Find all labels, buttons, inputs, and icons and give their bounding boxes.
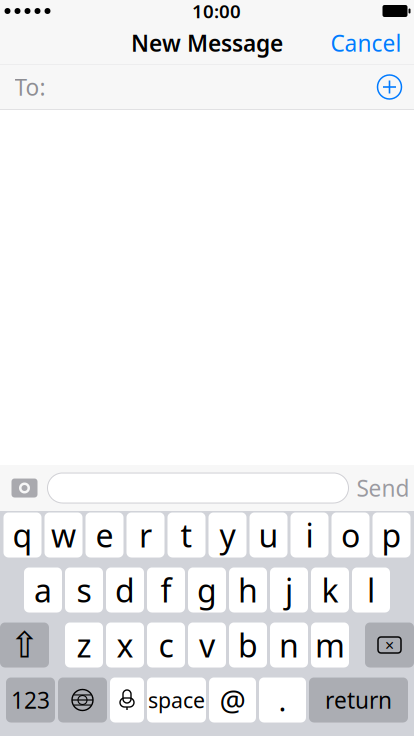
- staticText: y: [219, 514, 235, 556]
- button[interactable]: return: [309, 677, 408, 722]
- button[interactable]: c: [147, 622, 185, 667]
- staticText: j: [285, 569, 293, 611]
- staticText: d: [115, 569, 135, 611]
- button[interactable]: Add contact: [366, 66, 414, 108]
- staticText: u: [258, 514, 278, 556]
- staticText: ×: [385, 634, 394, 656]
- staticText: r: [139, 514, 152, 556]
- button[interactable]: n: [270, 622, 308, 667]
- button[interactable]: i: [290, 512, 328, 557]
- staticText: g: [197, 569, 217, 611]
- button[interactable]: Next keyboard: [58, 677, 107, 722]
- staticText: f: [160, 569, 171, 611]
- staticText: n: [279, 624, 299, 666]
- staticText: k: [321, 569, 338, 611]
- button[interactable]: o: [331, 512, 369, 557]
- button[interactable]: 123: [6, 677, 55, 722]
- staticText: b: [238, 624, 258, 666]
- staticText: q: [12, 514, 32, 556]
- staticText: Cancel: [330, 28, 401, 58]
- button[interactable]: x: [106, 622, 144, 667]
- button[interactable]: f: [147, 567, 185, 612]
- staticText: .: [278, 680, 286, 719]
- staticText: @: [219, 680, 245, 719]
- staticText: x: [116, 624, 133, 666]
- button[interactable]: Delete: [365, 622, 414, 667]
- button[interactable]: q: [3, 512, 41, 557]
- staticText: i: [305, 514, 313, 556]
- staticText: 10:00: [192, 0, 241, 23]
- button[interactable]: Cancel: [318, 19, 414, 67]
- button[interactable]: s: [65, 567, 103, 612]
- staticText: return: [325, 685, 392, 715]
- staticText: ⇧: [9, 625, 39, 665]
- button[interactable]: y: [208, 512, 246, 557]
- button[interactable]: space: [147, 677, 206, 722]
- button[interactable]: g: [188, 567, 226, 612]
- staticText: p: [381, 514, 401, 556]
- button[interactable]: m: [311, 622, 349, 667]
- staticText: 123: [11, 685, 50, 715]
- button[interactable]: Dictation: [110, 677, 144, 722]
- button[interactable]: z: [65, 622, 103, 667]
- button[interactable]: b: [229, 622, 267, 667]
- button[interactable]: k: [311, 567, 349, 612]
- staticText: space: [148, 686, 205, 714]
- button[interactable]: v: [188, 622, 226, 667]
- button[interactable]: l: [352, 567, 390, 612]
- button[interactable]: Shift: [0, 622, 49, 667]
- staticText: New Message: [131, 28, 283, 58]
- button[interactable]: j: [270, 567, 308, 612]
- button[interactable]: Message field: [47, 473, 348, 503]
- staticText: w: [51, 514, 76, 556]
- button[interactable]: h: [229, 567, 267, 612]
- button[interactable]: a: [24, 567, 62, 612]
- staticText: e: [95, 514, 113, 556]
- staticText: o: [341, 514, 360, 556]
- button[interactable]: w: [44, 512, 82, 557]
- button[interactable]: u: [249, 512, 287, 557]
- button[interactable]: e: [85, 512, 123, 557]
- button[interactable]: r: [126, 512, 164, 557]
- button[interactable]: Camera: [0, 469, 47, 507]
- staticText: c: [158, 624, 173, 666]
- staticText: t: [180, 514, 192, 556]
- button[interactable]: .: [259, 677, 306, 722]
- button[interactable]: d: [106, 567, 144, 612]
- staticText: h: [238, 569, 258, 611]
- staticText: v: [199, 624, 215, 666]
- staticText: To:: [14, 72, 45, 102]
- button[interactable]: p: [372, 512, 410, 557]
- staticText: Send: [356, 473, 409, 503]
- button[interactable]: t: [167, 512, 205, 557]
- staticText: l: [367, 569, 375, 611]
- staticText: z: [76, 624, 91, 666]
- staticText: s: [76, 569, 91, 611]
- staticText: a: [34, 569, 52, 611]
- button[interactable]: @: [209, 677, 256, 722]
- button[interactable]: Send: [348, 464, 414, 512]
- staticText: m: [315, 624, 345, 666]
